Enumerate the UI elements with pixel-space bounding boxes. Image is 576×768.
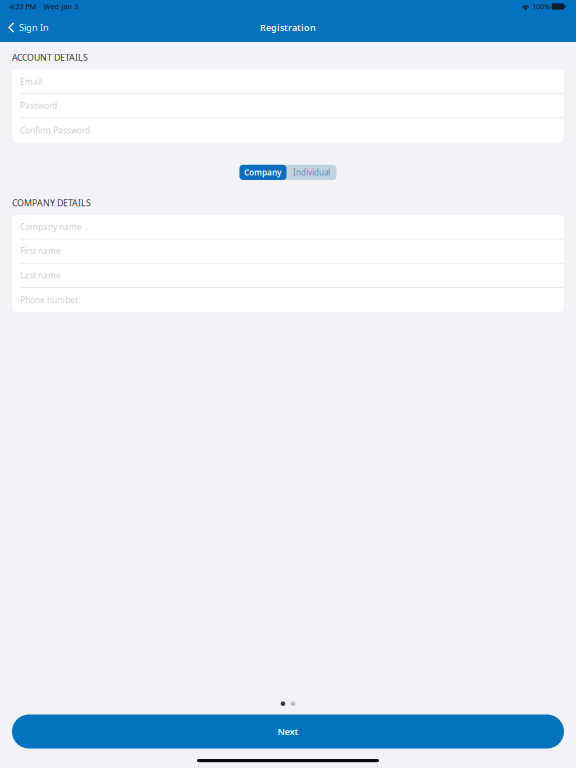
staticText: Company bbox=[244, 167, 282, 178]
staticText: Registration bbox=[260, 22, 316, 33]
button[interactable]: Confirm Password bbox=[12, 118, 564, 142]
button[interactable]: Page 1 of 2 bbox=[281, 701, 285, 706]
staticText: Email bbox=[20, 76, 42, 87]
button[interactable]: Page 2 of 2 bbox=[291, 701, 295, 706]
staticText: Wed Jan 5 bbox=[44, 2, 79, 11]
staticText: 100% bbox=[532, 2, 550, 11]
staticText: First name bbox=[20, 246, 61, 257]
staticText: Company name bbox=[20, 221, 82, 232]
staticText: Next bbox=[277, 725, 298, 738]
button[interactable]: Email bbox=[12, 70, 564, 94]
button[interactable]: Sign In bbox=[0, 13, 59, 42]
button[interactable]: Next bbox=[12, 714, 564, 748]
button[interactable]: Password bbox=[12, 94, 564, 118]
button[interactable]: Company name bbox=[12, 215, 564, 239]
staticText: COMPANY DETAILS bbox=[12, 197, 91, 209]
staticText: 4:23 PM bbox=[10, 2, 37, 11]
staticText: Password bbox=[20, 100, 57, 111]
staticText: ACCOUNT DETAILS bbox=[12, 51, 88, 63]
staticText: Phone number bbox=[20, 294, 78, 305]
button[interactable]: Company bbox=[239, 165, 286, 180]
button[interactable]: Last name bbox=[12, 264, 564, 288]
button[interactable]: First name bbox=[12, 239, 564, 264]
button[interactable]: Individual bbox=[286, 165, 336, 180]
staticText: Sign In bbox=[19, 21, 49, 34]
staticText: Individual bbox=[293, 167, 330, 178]
button[interactable]: Phone number bbox=[12, 288, 564, 312]
staticText: Last name bbox=[20, 270, 61, 281]
staticText: Confirm Password bbox=[20, 125, 90, 136]
